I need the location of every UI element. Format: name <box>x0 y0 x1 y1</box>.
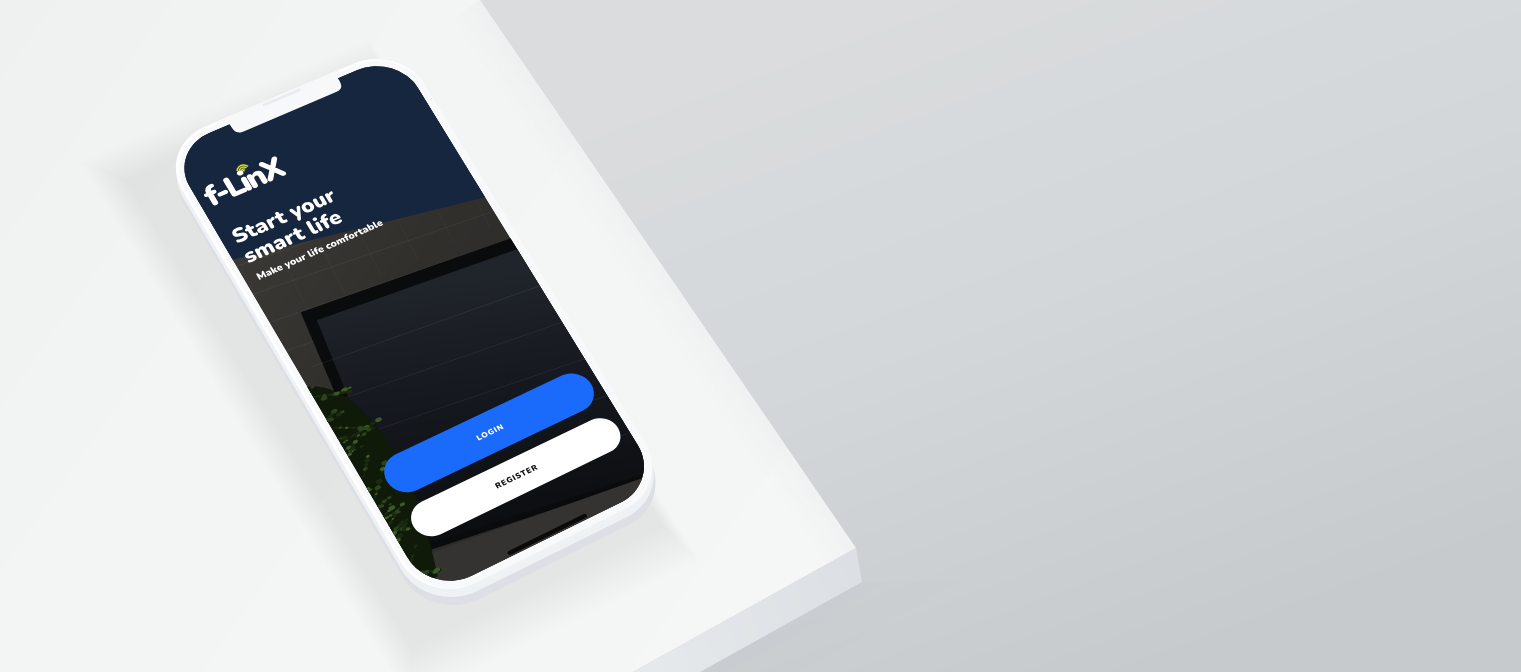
button[interactable]: Login <box>376 367 602 499</box>
button[interactable]: Register <box>404 412 628 543</box>
